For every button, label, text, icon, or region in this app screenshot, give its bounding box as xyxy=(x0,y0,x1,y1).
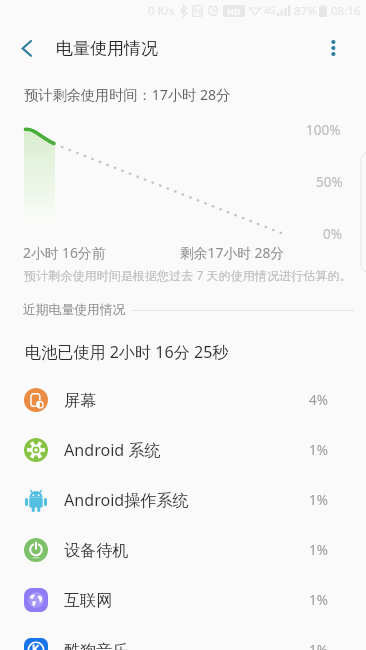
staticText: 50% xyxy=(316,173,343,191)
button[interactable]: Android 系统 xyxy=(0,425,366,475)
staticText: Android 系统 xyxy=(64,439,161,461)
button[interactable]: 酷狗音乐 xyxy=(0,625,366,650)
staticText: 电量使用情况 xyxy=(56,38,158,59)
staticText: 100% xyxy=(306,121,341,139)
staticText: 0 K/s xyxy=(148,3,175,19)
staticText: 1% xyxy=(309,491,328,509)
staticText: 08:16 xyxy=(331,3,361,19)
button[interactable]: 互联网 xyxy=(0,575,366,625)
staticText: 1% xyxy=(309,591,328,609)
staticText: HD xyxy=(227,5,241,17)
staticText: 屏幕 xyxy=(64,390,97,410)
button[interactable]: 屏幕 xyxy=(0,375,366,425)
staticText: 4G xyxy=(264,5,276,17)
staticText: 酷狗音乐 xyxy=(64,640,129,650)
staticText: 预计剩余使用时间是根据您过去 7 天的使用情况进行估算的。 xyxy=(24,267,352,284)
staticText: Android操作系统 xyxy=(64,489,189,511)
staticText: 2小时 16分前 xyxy=(23,243,106,262)
staticText: 1% xyxy=(309,541,328,559)
staticText: 1% xyxy=(309,641,328,650)
staticText: 0% xyxy=(323,225,342,243)
staticText: 87% xyxy=(294,3,317,19)
staticText: 电池已使用 2小时 16分 25秒 xyxy=(25,341,229,363)
button[interactable]: Android操作系统 xyxy=(0,475,366,525)
staticText: 4% xyxy=(309,391,328,409)
button[interactable]: Back xyxy=(11,32,43,64)
staticText: 1% xyxy=(309,441,328,459)
button[interactable]: More options xyxy=(321,34,346,59)
staticText: 互联网 xyxy=(64,590,113,610)
staticText: 近期电量使用情况 xyxy=(23,302,126,318)
staticText: 预计剩余使用时间：17小时 28分 xyxy=(24,85,231,104)
button[interactable]: 设备待机 xyxy=(0,525,366,575)
staticText: 剩余17小时 28分 xyxy=(180,243,285,262)
staticText: 设备待机 xyxy=(64,540,129,560)
